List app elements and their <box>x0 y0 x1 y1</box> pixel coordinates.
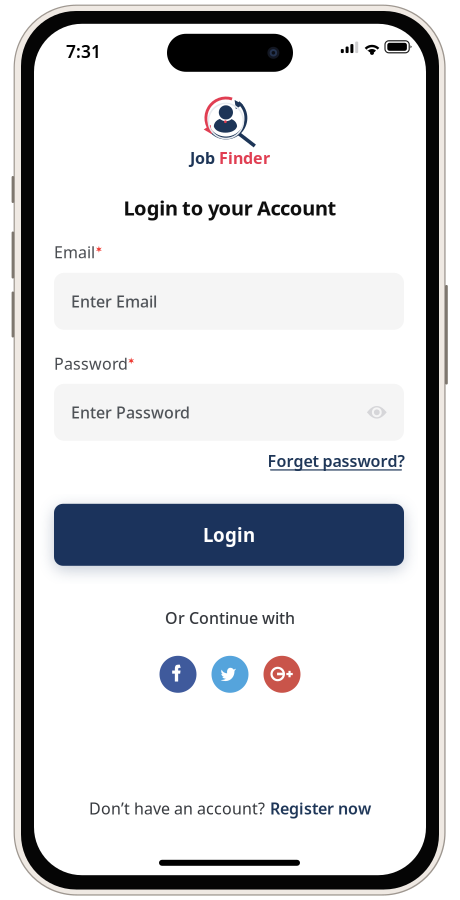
staticText: Job <box>190 147 215 168</box>
button[interactable]: Continue with Google <box>263 656 300 693</box>
staticText: Enter Email <box>71 291 157 312</box>
staticText: Password <box>54 353 128 374</box>
staticText: 7:31 <box>66 40 101 63</box>
staticText: Login <box>203 522 255 547</box>
button[interactable]: Continue with Facebook <box>159 656 196 693</box>
staticText: Enter Password <box>71 402 190 423</box>
staticText: Forget password? <box>267 450 404 471</box>
button[interactable]: Continue with Twitter <box>211 656 248 693</box>
staticText: Don’t have an account? <box>89 798 265 819</box>
button[interactable]: Register now <box>270 798 371 819</box>
staticText: Or Continue with <box>165 607 295 628</box>
staticText: Login to your Account <box>123 194 336 221</box>
staticText: Register now <box>270 798 371 819</box>
button[interactable]: Forget password? <box>266 453 406 475</box>
button[interactable]: Show password <box>367 405 387 419</box>
staticText: Finder <box>219 147 270 168</box>
staticText: Email <box>54 241 95 262</box>
button[interactable]: Login <box>54 504 404 566</box>
